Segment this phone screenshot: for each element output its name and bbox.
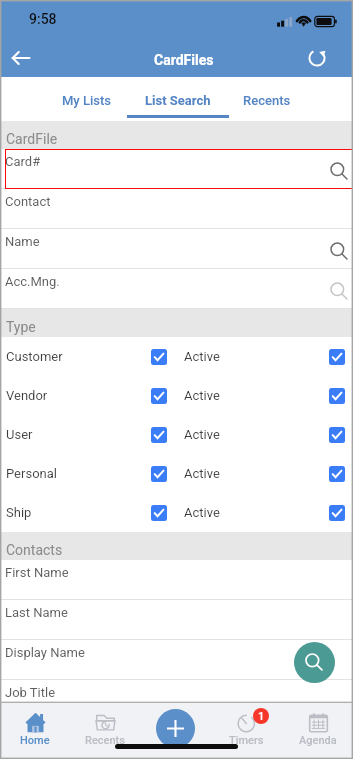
button[interactable]: Recents — [231, 77, 302, 121]
button[interactable]: Toggle — [151, 505, 167, 521]
staticText: Timers — [229, 734, 264, 747]
staticText: User — [6, 427, 33, 442]
button[interactable]: Toggle — [329, 349, 345, 365]
staticText: Contacts — [6, 542, 63, 558]
button[interactable]: List Search — [127, 77, 229, 121]
staticText: Card# — [5, 154, 41, 169]
staticText: First Name — [5, 565, 69, 580]
button[interactable]: Add — [156, 709, 195, 748]
staticText: Home — [20, 734, 50, 747]
button[interactable]: My Lists — [51, 77, 122, 121]
button[interactable]: Acc.Mng. — [0, 269, 353, 309]
button[interactable]: Card# — [0, 149, 353, 189]
button[interactable]: Home — [0, 702, 70, 759]
staticText: Acc.Mng. — [5, 274, 60, 289]
staticText: Contact — [5, 194, 51, 209]
button[interactable]: User — [0, 415, 353, 454]
staticText: Agenda — [299, 734, 337, 747]
staticText: Active — [184, 466, 220, 481]
staticText: 1 — [258, 710, 265, 723]
staticText: CardFile — [6, 131, 58, 147]
staticText: Name — [5, 234, 40, 249]
staticText: My Lists — [62, 93, 112, 108]
button[interactable]: Customer — [0, 337, 353, 376]
staticText: List Search — [145, 93, 211, 108]
staticText: Active — [184, 505, 220, 520]
button[interactable]: Personal — [0, 454, 353, 493]
button[interactable]: Contact — [0, 189, 353, 229]
staticText: Recents — [85, 734, 125, 747]
staticText: Job Title — [5, 685, 56, 700]
staticText: Personal — [6, 466, 57, 481]
button[interactable]: Toggle — [151, 427, 167, 443]
button[interactable]: Toggle — [329, 388, 345, 404]
button[interactable]: Back — [5, 42, 37, 74]
button[interactable]: Display Name — [0, 640, 353, 680]
staticText: Type — [6, 319, 36, 335]
button[interactable]: Toggle — [151, 466, 167, 482]
staticText: Active — [184, 349, 220, 364]
staticText: Active — [184, 388, 220, 403]
button[interactable]: Job Title — [0, 680, 353, 702]
button[interactable]: First Name — [0, 560, 353, 600]
button[interactable]: Refresh — [301, 42, 333, 74]
button[interactable]: Timers — [211, 702, 282, 759]
button[interactable]: Toggle — [329, 505, 345, 521]
button[interactable]: Recents — [70, 702, 140, 759]
button[interactable]: Last Name — [0, 600, 353, 640]
button[interactable]: Search — [294, 642, 335, 683]
staticText: Customer — [6, 349, 63, 364]
staticText: Ship — [6, 505, 32, 520]
staticText: Display Name — [5, 645, 85, 660]
button[interactable]: Toggle — [151, 388, 167, 404]
staticText: 9:58 — [29, 11, 57, 27]
staticText: Active — [184, 427, 220, 442]
button[interactable]: Toggle — [151, 349, 167, 365]
staticText: CardFiles — [154, 52, 214, 68]
button[interactable]: Agenda — [282, 702, 353, 759]
button[interactable]: Vendor — [0, 376, 353, 415]
button[interactable]: Ship — [0, 493, 353, 532]
button[interactable]: Name — [0, 229, 353, 269]
staticText: Recents — [243, 93, 291, 108]
staticText: Vendor — [6, 388, 48, 403]
button[interactable]: Toggle — [329, 427, 345, 443]
button[interactable]: Toggle — [329, 466, 345, 482]
staticText: Last Name — [5, 605, 68, 620]
